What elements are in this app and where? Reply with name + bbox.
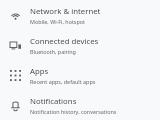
other: Connected devices [0,30,30,60]
staticText: Notification history, conversations [30,108,117,115]
staticText: Connected devices [30,36,99,47]
button[interactable]: Notifications [0,90,160,120]
staticText: Bluetooth, pairing [30,48,76,55]
button[interactable]: Network and internet [0,0,160,30]
button[interactable]: Connected devices [0,30,160,60]
staticText: Apps [30,66,49,77]
other: Network and internet [0,0,30,30]
other: Apps [0,60,30,90]
staticText: Network & internet [30,6,101,17]
staticText: Mobile, Wi-Fi, hotspot [30,18,85,25]
staticText: Recent apps, default apps [30,78,96,85]
staticText: Notifications [30,96,77,107]
other: Notifications [0,90,30,120]
button[interactable]: Apps [0,60,160,90]
